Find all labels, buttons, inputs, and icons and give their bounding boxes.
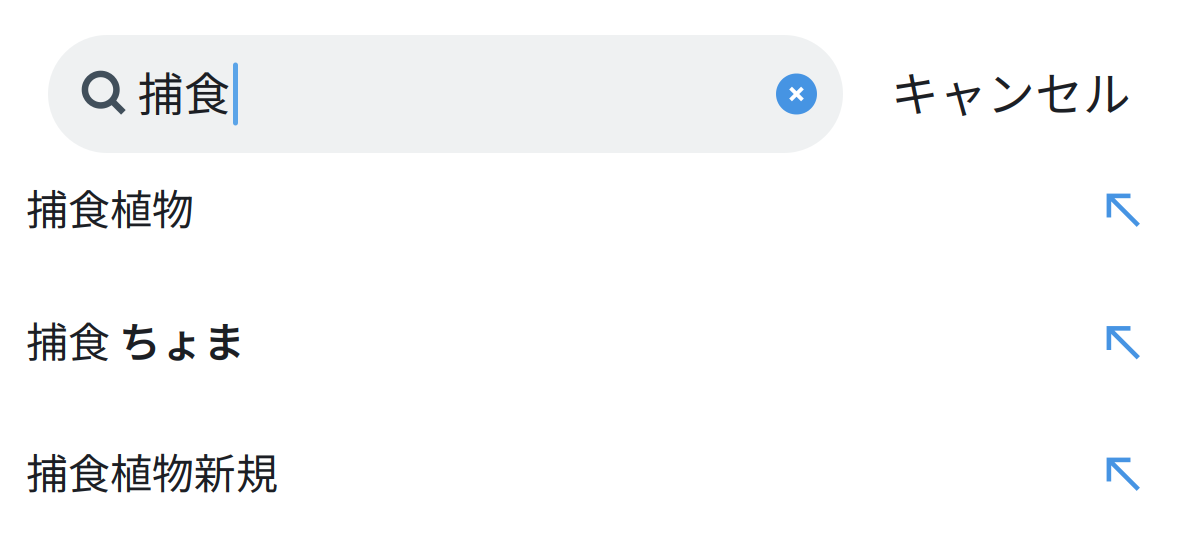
button[interactable]: キャンセル	[859, 35, 1152, 153]
button[interactable]: 捕食	[0, 261, 1179, 418]
staticText: 捕食	[26, 309, 119, 370]
button[interactable]: 捕食植物新規	[0, 418, 1179, 524]
staticText: 捕食植物	[26, 177, 194, 237]
button[interactable]: Search field	[48, 35, 843, 153]
staticText: ちょま	[119, 309, 245, 370]
staticText: 捕食	[138, 58, 230, 124]
staticText: キャンセル	[891, 56, 1131, 125]
button[interactable]: 捕食植物	[0, 153, 1179, 261]
staticText: 捕食植物新規	[26, 441, 278, 501]
button[interactable]: Clear text	[776, 57, 843, 130]
